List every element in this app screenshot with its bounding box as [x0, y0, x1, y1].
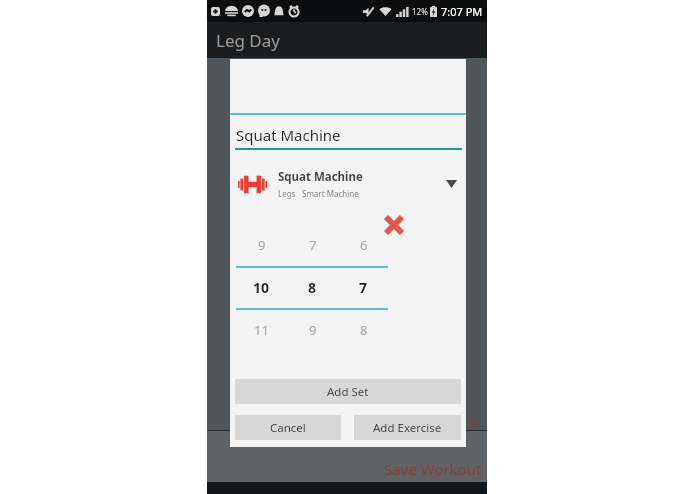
staticText: Smart Machine	[302, 188, 359, 199]
staticText: Save Workout	[384, 459, 482, 479]
staticText: Cancel	[270, 420, 306, 436]
staticText: 7:07 PM	[441, 4, 483, 19]
button[interactable]: Add Exercise	[354, 415, 461, 440]
staticText: Squat Machine	[236, 125, 341, 145]
staticText: 6	[360, 236, 368, 254]
staticText: 7	[359, 278, 368, 297]
button[interactable]: Cancel	[235, 415, 341, 440]
staticText: 8	[308, 278, 317, 297]
button[interactable]: 6	[338, 223, 389, 351]
staticText: se	[466, 413, 481, 432]
staticText: 7	[309, 236, 317, 254]
staticText: Leg Day	[216, 29, 280, 52]
staticText: 8	[360, 321, 368, 339]
button[interactable]: Add Set	[235, 379, 461, 404]
button[interactable]: Remove set	[380, 211, 408, 239]
staticText: Legs	[278, 188, 296, 199]
staticText: Add Exercise	[373, 420, 442, 436]
button[interactable]: 7	[287, 223, 338, 351]
button[interactable]: Squat Machine	[230, 162, 466, 206]
staticText: 9	[258, 236, 266, 254]
staticText: 12%	[412, 6, 428, 17]
staticText: 9	[309, 321, 317, 339]
button[interactable]: 9	[236, 223, 287, 351]
staticText: Squat Machine	[278, 169, 363, 185]
staticText: 10	[253, 278, 270, 297]
staticText: Add Set	[327, 384, 369, 400]
staticText: 11	[254, 321, 269, 339]
